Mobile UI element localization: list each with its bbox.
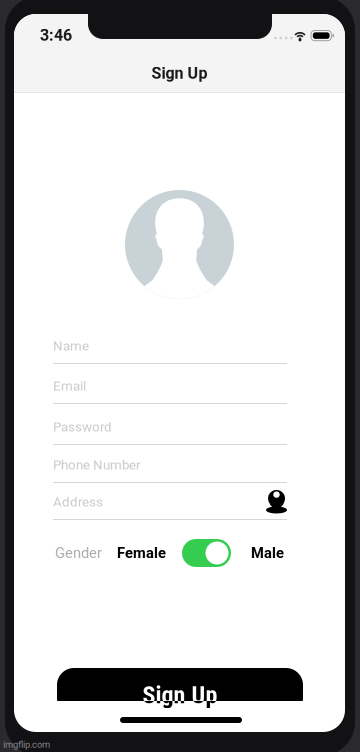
- button[interactable]: Phone Number: [53, 445, 287, 483]
- staticText: 3:46: [40, 26, 72, 45]
- staticText: Phone Number: [53, 457, 141, 473]
- staticText: Email: [53, 378, 86, 394]
- button[interactable]: Sign Up: [57, 668, 303, 715]
- staticText: Address: [53, 494, 103, 510]
- staticText: Name: [53, 338, 89, 354]
- staticText: Sign Up: [142, 681, 217, 709]
- button[interactable]: Name: [53, 325, 287, 364]
- button[interactable]: Email: [53, 364, 287, 404]
- staticText: Sign Up: [142, 681, 217, 709]
- button[interactable]: Password: [53, 404, 287, 445]
- staticText: Female: [117, 544, 166, 562]
- button[interactable]: [182, 539, 231, 567]
- staticText: Gender: [55, 544, 102, 562]
- button[interactable]: Address: [53, 483, 287, 520]
- staticText: Male: [251, 544, 284, 562]
- staticText: Sign Up: [151, 64, 207, 83]
- staticText: imgflip.com: [3, 739, 50, 750]
- staticText: Password: [53, 419, 112, 435]
